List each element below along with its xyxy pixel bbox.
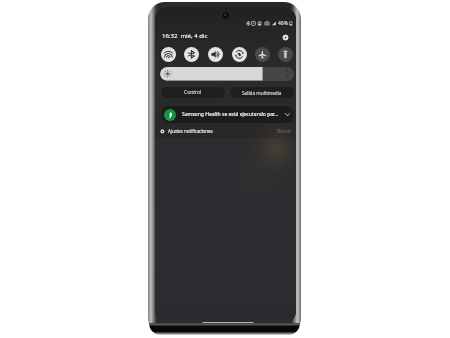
staticText: 16:32 mié, 4 dic (162, 32, 208, 40)
staticText: Control (184, 89, 202, 96)
button[interactable]: Borrar (277, 128, 291, 134)
staticText: Samsung Health se está ejecutando par... (182, 111, 279, 118)
button[interactable]: Ajustes notificaciones (159, 126, 213, 136)
staticText: Borrar (277, 128, 291, 134)
staticText: 46% (278, 20, 288, 27)
button[interactable]: Settings (280, 32, 291, 43)
button[interactable]: Samsung Health se está ejecutando par... (161, 106, 294, 123)
button[interactable]: Flashlight (278, 47, 293, 62)
staticText: Salida multimedia (242, 90, 282, 96)
button[interactable]: Auto rotate (232, 47, 247, 62)
button[interactable]: Control (161, 87, 225, 98)
button[interactable]: Brightness (160, 67, 294, 81)
staticText: Ajustes notificaciones (168, 128, 213, 134)
button[interactable]: Salida multimedia (230, 87, 294, 98)
button[interactable]: Airplane mode (255, 47, 270, 62)
button[interactable]: 16:32 mié, 4 dic (162, 32, 208, 40)
button[interactable]: Sound (208, 47, 223, 62)
button[interactable]: Bluetooth (184, 47, 199, 62)
button[interactable]: Expand notification (283, 110, 292, 119)
button[interactable]: Wi-Fi (161, 47, 176, 62)
